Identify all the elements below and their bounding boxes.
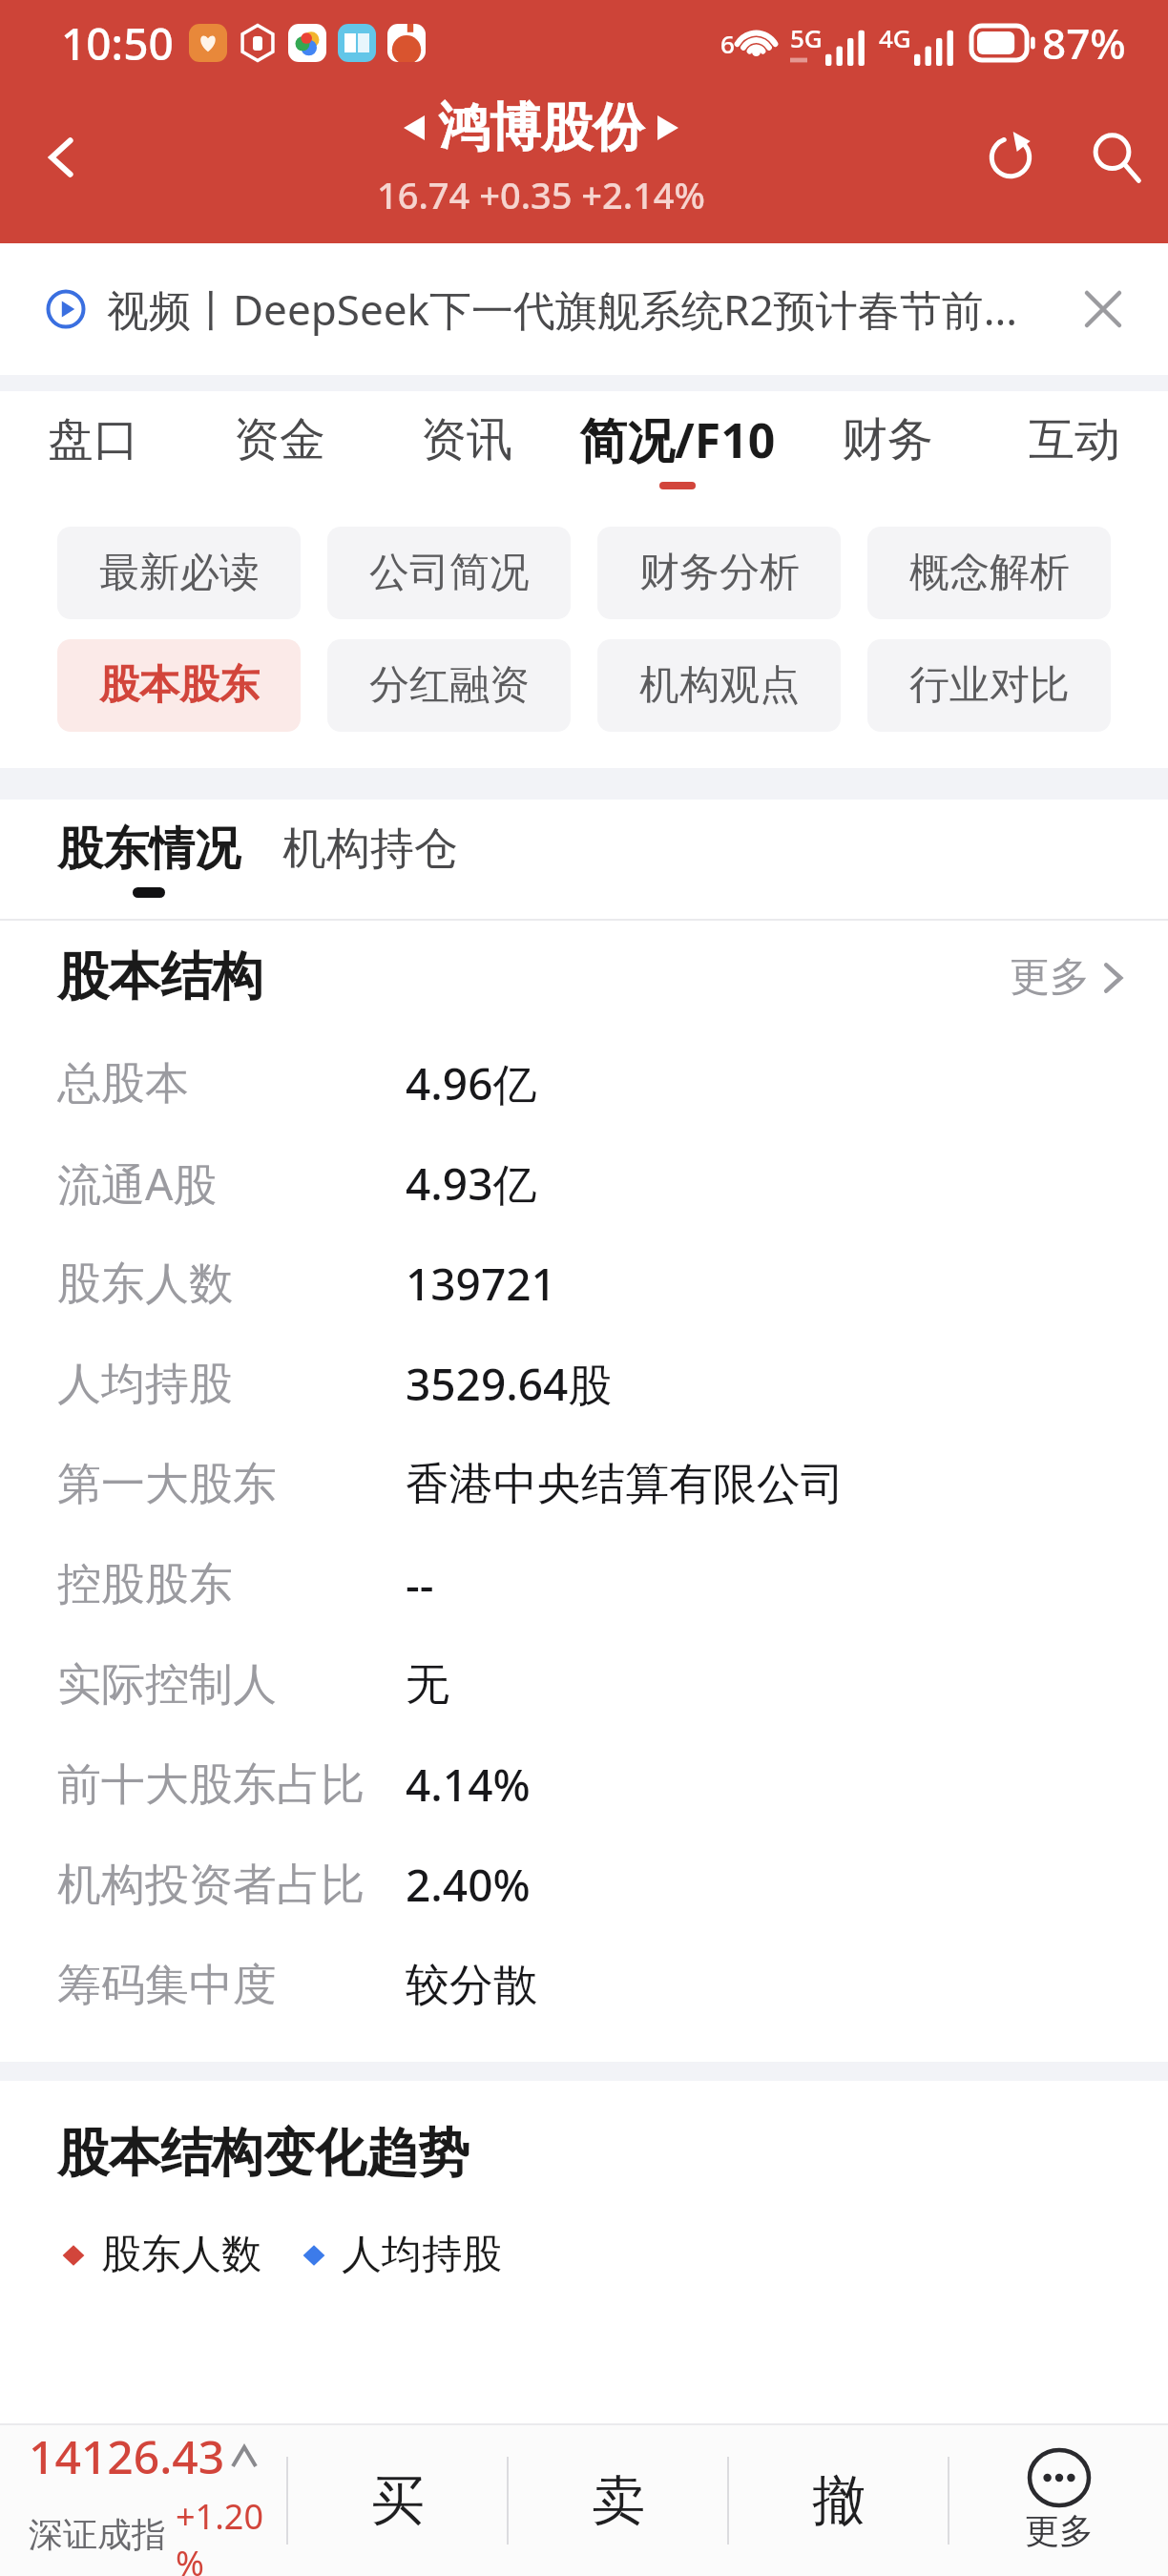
button[interactable]: 视频丨DeepSeek下一代旗舰系统R2预计春节前... <box>0 243 1168 375</box>
staticText: 财务分析 <box>639 548 800 598</box>
button[interactable]: 行业对比 <box>867 639 1111 732</box>
staticText: 股本股东 <box>99 660 260 711</box>
staticText: 人均持股 <box>342 2230 502 2280</box>
staticText: 股东人数 <box>57 1257 406 1312</box>
staticText: 视频丨DeepSeek下一代旗舰系统R2预计春节前... <box>107 280 1059 338</box>
staticText: 6 <box>720 27 735 60</box>
staticText: 实际控制人 <box>57 1657 406 1713</box>
staticText: +1.20% <box>176 2493 286 2576</box>
staticText: 更多 <box>1010 952 1090 1003</box>
staticText: 3529.64股 <box>406 1354 613 1414</box>
button[interactable]: Refresh <box>958 105 1063 210</box>
staticText: 139721 <box>406 1254 556 1314</box>
staticText: 盘口 <box>48 411 139 468</box>
button[interactable]: 机构持仓 <box>282 821 458 897</box>
button[interactable]: 总股本 <box>0 1033 1168 1133</box>
button[interactable]: 资讯 <box>373 391 560 506</box>
staticText: 简况/F10 <box>579 407 776 472</box>
button[interactable]: 股东情况 <box>57 821 240 898</box>
staticText: 香港中央结算有限公司 <box>406 1457 845 1512</box>
staticText: 16.74 +0.35 +2.14% <box>377 170 705 219</box>
staticText: 总股本 <box>57 1056 406 1111</box>
button[interactable]: 卖 <box>509 2425 727 2576</box>
staticText: 资金 <box>234 411 325 468</box>
button[interactable]: Back <box>0 76 124 239</box>
staticText: 87% <box>1042 14 1126 72</box>
button[interactable]: 机构观点 <box>597 639 841 732</box>
staticText: 互动 <box>1029 411 1120 468</box>
staticText: 前十大股东占比 <box>57 1757 406 1813</box>
button[interactable]: 简况/F10 <box>560 391 794 506</box>
staticText: 4.93亿 <box>406 1153 537 1214</box>
staticText: 更多 <box>1025 2509 1094 2552</box>
staticText: 财务 <box>842 411 933 468</box>
staticText: 股本结构变化趋势 <box>57 2121 469 2186</box>
button[interactable]: 概念解析 <box>867 527 1111 619</box>
staticText: 最新必读 <box>99 548 260 598</box>
button[interactable]: 最新必读 <box>57 527 301 619</box>
staticText: 深证成指 <box>29 2513 166 2556</box>
staticText: 人均持股 <box>57 1357 406 1412</box>
button[interactable]: 撤 <box>729 2425 948 2576</box>
staticText: 概念解析 <box>909 548 1070 598</box>
button[interactable]: 筹码集中度 <box>0 1935 1168 2035</box>
staticText: 卖 <box>592 2467 645 2535</box>
button[interactable]: 财务分析 <box>597 527 841 619</box>
staticText: 流通A股 <box>57 1153 406 1214</box>
staticText: 4.96亿 <box>406 1053 537 1113</box>
button[interactable]: 实际控制人 <box>0 1634 1168 1735</box>
staticText: 10:50 <box>61 13 174 73</box>
button[interactable]: 更多 <box>1010 952 1126 1003</box>
button[interactable]: 第一大股东 <box>0 1434 1168 1534</box>
button[interactable]: 更多 <box>949 2425 1168 2576</box>
staticText: 第一大股东 <box>57 1457 406 1512</box>
button[interactable]: 分红融资 <box>327 639 571 732</box>
staticText: 分红融资 <box>369 660 530 711</box>
button[interactable]: 前十大股东占比 <box>0 1735 1168 1835</box>
button[interactable]: 流通A股 <box>0 1133 1168 1234</box>
staticText: 4.14% <box>406 1755 531 1815</box>
button[interactable]: 控股股东 <box>0 1534 1168 1634</box>
staticText: 控股股东 <box>57 1557 406 1612</box>
button[interactable]: 买 <box>288 2425 507 2576</box>
staticText: 2.40% <box>406 1855 531 1915</box>
button[interactable]: 互动 <box>981 391 1168 506</box>
staticText: 行业对比 <box>909 660 1070 711</box>
staticText: 机构观点 <box>639 660 800 711</box>
staticText: 无 <box>406 1657 449 1713</box>
staticText: 买 <box>371 2467 425 2535</box>
button[interactable]: 盘口 <box>0 391 186 506</box>
staticText: -- <box>406 1554 434 1614</box>
button[interactable]: 公司简况 <box>327 527 571 619</box>
staticText: 5G <box>790 21 823 54</box>
staticText: 资讯 <box>421 411 512 468</box>
staticText: 股东情况 <box>57 821 240 878</box>
staticText: 股东人数 <box>101 2230 261 2280</box>
staticText: 公司简况 <box>369 548 530 598</box>
staticText: 机构投资者占比 <box>57 1858 406 1913</box>
button[interactable]: 人均持股 <box>0 1334 1168 1434</box>
button[interactable]: Search <box>1063 105 1168 210</box>
staticText: 4G <box>879 21 911 54</box>
staticText: 撤 <box>812 2467 866 2535</box>
staticText: 14126.43 <box>29 2425 225 2487</box>
staticText: 鸿博股份 <box>438 95 644 160</box>
button[interactable]: 股本股东 <box>57 639 301 732</box>
staticText: 较分散 <box>406 1958 537 2013</box>
staticText: 股本结构 <box>57 945 263 1009</box>
button[interactable]: 股东人数 <box>0 1234 1168 1334</box>
button[interactable]: 资金 <box>186 391 373 506</box>
button[interactable]: 14126.43 <box>0 2425 286 2576</box>
button[interactable]: 财务 <box>794 391 981 506</box>
button[interactable]: 机构投资者占比 <box>0 1835 1168 1935</box>
staticText: 机构持仓 <box>282 821 458 877</box>
button[interactable]: Close <box>1073 279 1134 340</box>
staticText: 筹码集中度 <box>57 1958 406 2013</box>
